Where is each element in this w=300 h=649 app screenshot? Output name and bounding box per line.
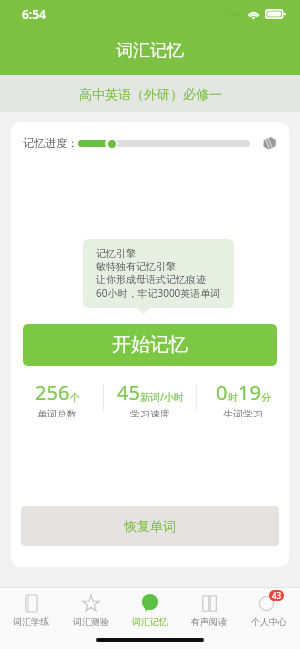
button[interactable]: 开始记忆 (23, 324, 277, 366)
staticText: 60小时，牢记3000英语单词 (96, 286, 221, 300)
staticText: 记忆引擎 (96, 247, 136, 260)
staticText: 开始记忆 (112, 333, 188, 357)
staticText: 45 (117, 379, 140, 406)
staticText: 时 (228, 391, 238, 404)
staticText: 个人中心 (251, 616, 287, 627)
button[interactable]: 词汇测验 (63, 593, 119, 627)
button[interactable]: 0 (197, 379, 289, 417)
staticText: 43 (272, 590, 282, 601)
staticText: 新词/小时 (140, 390, 184, 404)
staticText: 生词学习 (223, 408, 263, 417)
button[interactable]: 词库 (260, 134, 278, 152)
staticText: 词汇记忆 (132, 616, 168, 627)
staticText: 高中英语（外研）必修一 (79, 86, 222, 102)
button[interactable]: 词汇记忆 (122, 593, 178, 627)
staticText: 词汇学练 (13, 616, 49, 627)
button[interactable]: 43 (241, 593, 297, 627)
staticText: 敏特独有记忆引擎 (96, 260, 176, 273)
staticText: 记忆进度： (23, 136, 78, 150)
staticText: 分 (261, 391, 271, 404)
staticText: 单词总数 (37, 408, 77, 417)
button[interactable]: 词汇学练 (3, 593, 59, 627)
staticText: 词汇记忆 (116, 40, 184, 61)
staticText: 词汇测验 (73, 616, 109, 627)
staticText: 学习速度 (130, 408, 170, 417)
button[interactable]: 45 (104, 379, 196, 417)
staticText: 0 (216, 379, 228, 406)
staticText: 个 (70, 391, 80, 404)
staticText: 6:54 (22, 6, 46, 22)
staticText: 让你形成母语式记忆痕迹 (96, 273, 206, 286)
button[interactable]: 256 (11, 379, 103, 417)
staticText: 有声阅读 (191, 616, 227, 627)
staticText: 恢复单词 (124, 518, 176, 534)
button[interactable]: 恢复单词 (21, 506, 279, 546)
staticText: 19 (238, 379, 261, 406)
button[interactable]: 高中英语（外研）必修一 (0, 75, 300, 112)
button[interactable]: 有声阅读 (181, 593, 237, 627)
staticText: 256 (35, 379, 70, 406)
